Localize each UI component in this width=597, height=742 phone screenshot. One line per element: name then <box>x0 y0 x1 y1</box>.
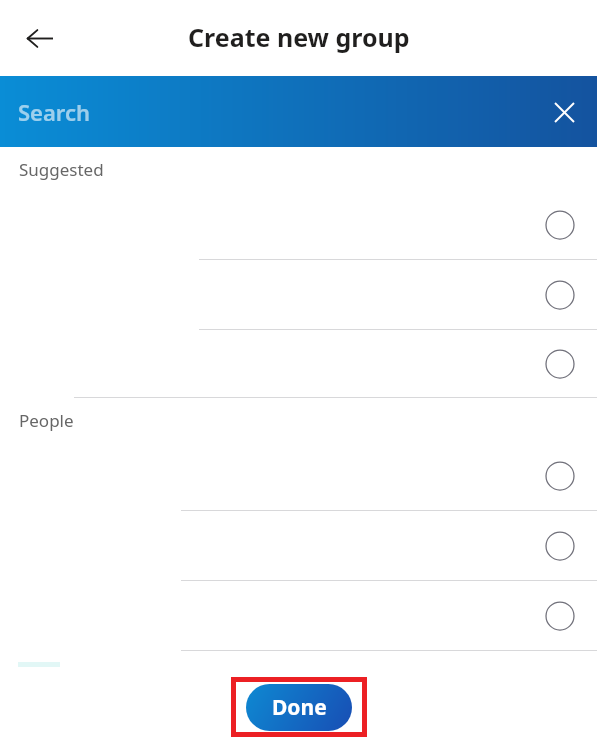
button[interactable]: Select contact <box>0 191 597 258</box>
button[interactable]: Done <box>246 684 352 731</box>
button[interactable]: Clear search <box>542 90 586 134</box>
staticText: Done <box>272 693 327 722</box>
button[interactable]: Back <box>17 16 61 60</box>
button[interactable]: Select contact <box>0 442 597 509</box>
staticText: Search <box>18 97 91 127</box>
button[interactable]: Search <box>0 76 597 147</box>
button[interactable]: Select contact <box>0 331 597 397</box>
button[interactable]: Select contact <box>0 261 597 328</box>
button[interactable]: Select contact <box>0 512 597 579</box>
staticText: Create new group <box>188 20 410 54</box>
button[interactable]: Select contact <box>0 582 597 649</box>
staticText: People <box>19 409 74 432</box>
staticText: Suggested <box>19 158 104 181</box>
